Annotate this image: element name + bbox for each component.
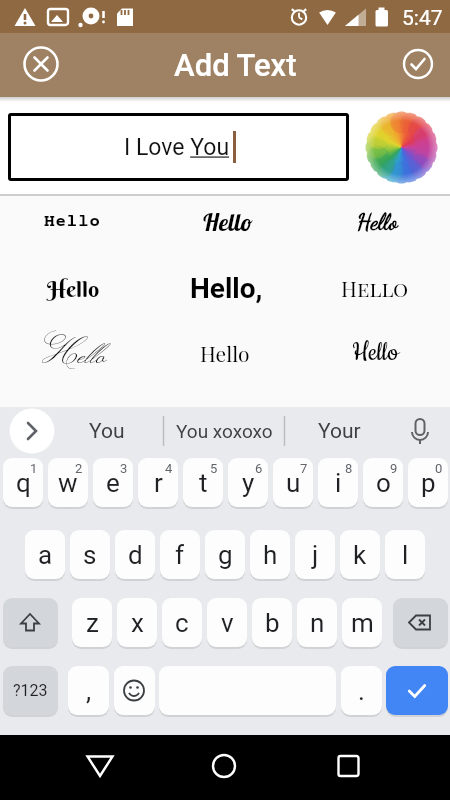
staticText: d [128,540,143,570]
staticText: 5 [210,461,218,476]
staticText: k [353,540,367,570]
staticText: I Love You [124,134,230,161]
staticText: e [106,468,120,498]
staticText: 0 [435,461,443,476]
staticText: ?123 [13,681,48,700]
staticText: Add Text [174,47,297,83]
staticText: u [286,468,301,498]
staticText: . [358,676,365,706]
staticText: Hello [200,339,250,367]
staticText: 4 [165,461,173,476]
staticText: v [221,608,234,638]
staticText: h [263,540,278,570]
staticText: t [199,468,208,498]
staticText: , [86,676,92,706]
staticText: 7 [300,461,308,476]
staticText: n [310,608,325,638]
staticText: x [131,608,144,638]
staticText: j [312,540,319,570]
staticText: Hello [357,208,398,236]
staticText: r [154,468,163,498]
staticText: f [175,540,185,570]
staticText: You [89,419,125,444]
staticText: a [38,540,53,570]
staticText: q [16,468,31,498]
staticText: p [421,468,436,498]
staticText: Your [318,419,361,444]
staticText: Hello [352,336,399,369]
staticText: 6 [255,461,263,476]
staticText: Hello, [190,272,263,305]
staticText: z [86,608,99,638]
staticText: c [175,608,189,638]
staticText: Hello [341,274,409,302]
staticText: 8 [345,461,353,476]
staticText: Hello [44,212,101,232]
staticText: 3 [120,461,128,476]
staticText: b [265,608,280,638]
staticText: You xoxoxo [176,420,273,442]
staticText: g [218,540,233,570]
staticText: Hello [47,275,100,302]
staticText: 5:47 [402,6,443,31]
staticText: 1 [30,461,38,476]
staticText: 2 [75,461,83,476]
staticText: l [402,540,409,570]
staticText: 9 [390,461,398,476]
staticText: m [351,608,374,638]
staticText: i [335,468,342,498]
staticText: Hello [42,328,108,378]
staticText: s [83,540,97,570]
staticText: w [58,468,78,498]
staticText: o [376,468,391,498]
staticText: Hello [202,207,253,237]
staticText: y [242,468,255,498]
